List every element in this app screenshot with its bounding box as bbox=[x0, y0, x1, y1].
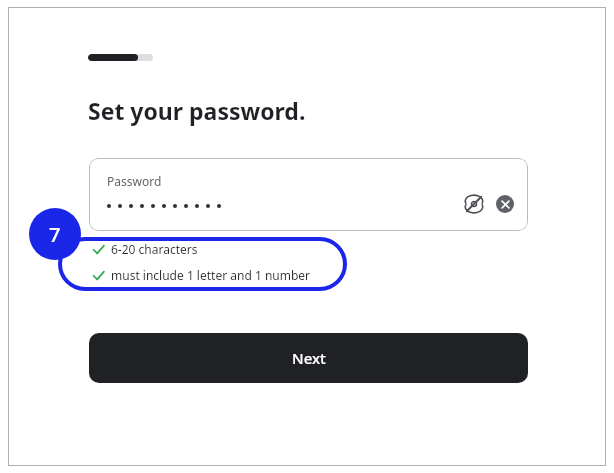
button[interactable]: Next bbox=[89, 333, 528, 383]
staticText: must include 1 letter and 1 number bbox=[111, 267, 311, 283]
staticText: Password bbox=[107, 173, 162, 189]
staticText: 6-20 characters bbox=[111, 241, 198, 257]
staticText: Next bbox=[292, 348, 326, 368]
button[interactable]: Hide password bbox=[462, 192, 486, 216]
staticText: 7 bbox=[49, 221, 61, 248]
button[interactable]: Clear text bbox=[496, 195, 514, 213]
staticText: Set your password. bbox=[88, 95, 306, 126]
button[interactable]: Password bbox=[89, 158, 528, 231]
